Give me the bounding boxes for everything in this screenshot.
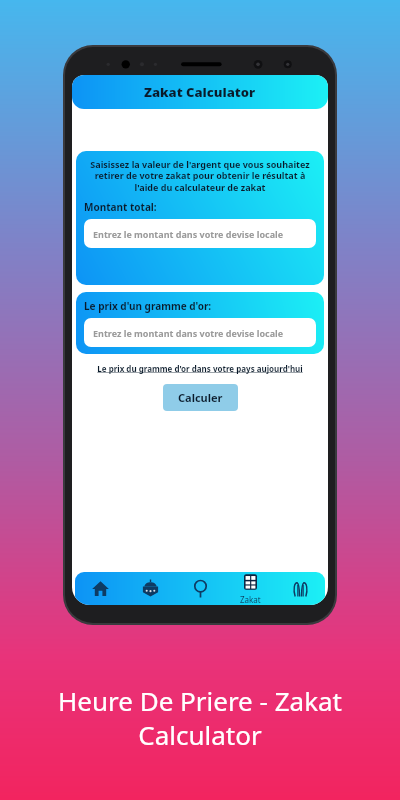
staticText: Entrez le montant dans votre devise loca… <box>93 228 284 240</box>
staticText: Saisissez la valeur de l'argent que vous… <box>84 158 316 194</box>
staticText: Le prix d'un gramme d'or: <box>84 299 212 313</box>
button[interactable]: Qibla direction <box>175 572 225 605</box>
staticText: Calculer <box>178 390 223 405</box>
staticText: Heure De Priere - Zakat Calculator <box>20 683 380 752</box>
staticText: Zakat <box>240 594 261 605</box>
staticText: Zakat Calculator <box>144 83 256 101</box>
button[interactable]: Calculer <box>163 384 238 411</box>
button[interactable]: Mosque <box>125 572 175 605</box>
staticText: Entrez le montant dans votre devise loca… <box>93 327 284 339</box>
button[interactable]: Entrez le montant dans votre devise loca… <box>84 318 316 347</box>
staticText: Montant total: <box>84 200 157 214</box>
button[interactable]: Dua <box>275 572 325 605</box>
button[interactable]: Zakat calculator <box>225 572 275 605</box>
button[interactable]: Home <box>75 572 125 605</box>
button[interactable]: Entrez le montant dans votre devise loca… <box>84 219 316 248</box>
button[interactable]: Le prix du gramme d'or dans votre pays a… <box>72 363 328 374</box>
